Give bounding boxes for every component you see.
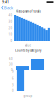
staticText: 0 <box>12 89 14 92</box>
staticText: Back <box>4 5 13 10</box>
staticText: 9 <box>12 70 14 73</box>
staticText: group <box>23 94 32 98</box>
staticText: 10 <box>8 33 12 36</box>
staticText: Histogram of totals <box>15 10 40 13</box>
staticText: 0 <box>10 39 12 43</box>
staticText: 9:41 <box>2 0 9 4</box>
staticText: 20 <box>8 26 12 30</box>
staticText: 3 <box>12 83 14 87</box>
staticText: 30 <box>9 63 13 66</box>
staticText: 60 <box>9 57 13 61</box>
staticText: 0 <box>11 68 13 72</box>
staticText: 30 <box>8 20 12 23</box>
button[interactable]: Back <box>0 4 14 11</box>
staticText: 6 <box>12 77 14 80</box>
staticText: Counts by category <box>15 49 41 52</box>
staticText: 40 <box>8 13 12 17</box>
staticText: value <box>24 44 31 47</box>
